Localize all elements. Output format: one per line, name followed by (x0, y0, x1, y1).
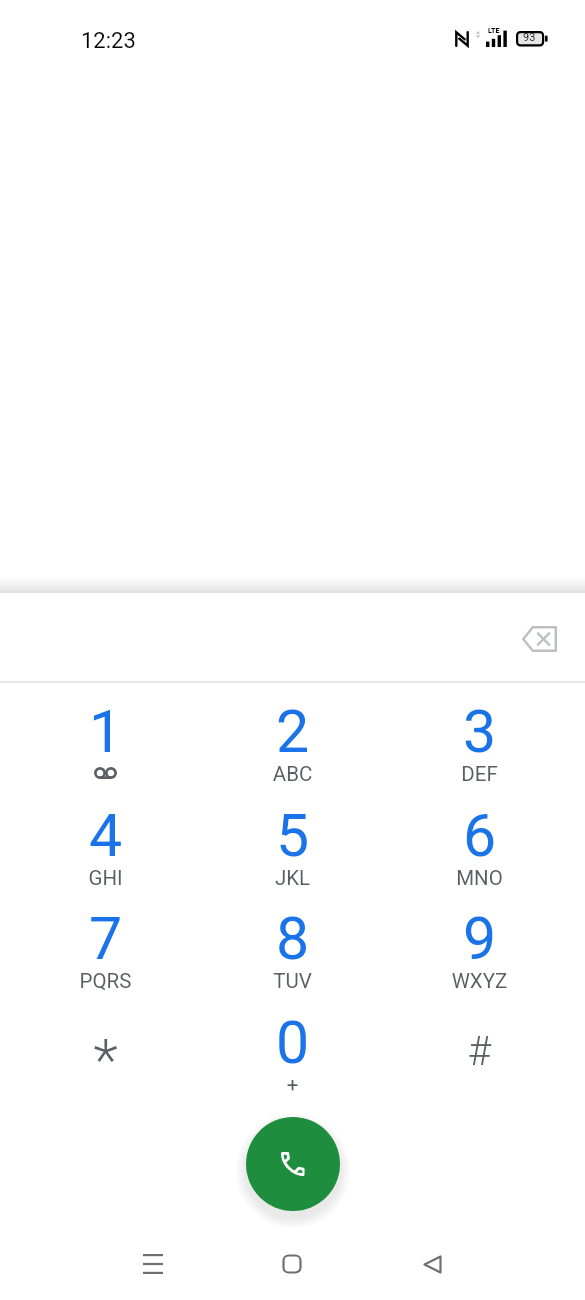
staticText: 5 (199, 801, 386, 870)
button[interactable]: Backspace (512, 611, 567, 666)
staticText: TUV (199, 969, 386, 993)
button[interactable]: 9 (386, 890, 573, 994)
button[interactable]: 4 (12, 787, 199, 891)
button[interactable]: Call (246, 1117, 340, 1211)
staticText: # (386, 1028, 573, 1075)
staticText: DEF (386, 762, 573, 786)
button[interactable]: 0 (199, 994, 386, 1098)
staticText: ABC (199, 762, 386, 786)
button[interactable]: 5 (199, 787, 386, 891)
button[interactable]: 3 (386, 683, 573, 787)
button[interactable]: 2 (199, 683, 386, 787)
button[interactable]: * (12, 994, 199, 1098)
button[interactable]: 8 (199, 890, 386, 994)
button[interactable]: 7 (12, 890, 199, 994)
button[interactable]: # (386, 994, 573, 1098)
staticText: 2 (199, 697, 386, 766)
button[interactable]: Home (262, 1234, 322, 1294)
button[interactable]: 6 (386, 787, 573, 891)
button[interactable]: Back (402, 1234, 462, 1294)
staticText: MNO (386, 866, 573, 890)
staticText: 93 (523, 31, 536, 44)
staticText: LTE (488, 27, 500, 35)
staticText: * (12, 1027, 199, 1094)
button[interactable]: Recents (123, 1234, 183, 1294)
staticText: 9 (386, 904, 573, 973)
staticText: 7 (12, 904, 199, 973)
staticText: 6 (386, 801, 573, 870)
button[interactable]: 1 (12, 683, 199, 787)
staticText: 0 (199, 1008, 386, 1077)
staticText: GHI (12, 866, 199, 890)
staticText: 4 (12, 801, 199, 870)
staticText: + (199, 1073, 386, 1097)
staticText: PQRS (12, 969, 199, 993)
staticText: 8 (199, 904, 386, 973)
staticText: 3 (386, 697, 573, 766)
staticText: JKL (199, 866, 386, 890)
staticText: 1 (12, 697, 199, 766)
staticText: WXYZ (386, 969, 573, 993)
staticText: 12:23 (81, 28, 136, 54)
